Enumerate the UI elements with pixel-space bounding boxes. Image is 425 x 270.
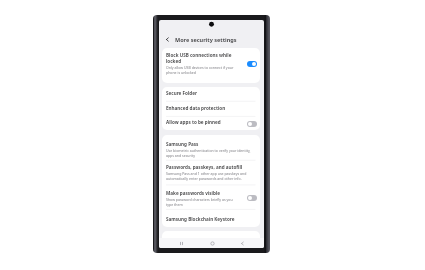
button[interactable]: Toggle off [247,195,257,201]
staticText: Block USB connections while locked [166,52,232,65]
staticText: Show password characters briefly as you … [166,197,233,207]
button[interactable]: Toggle on [247,61,257,67]
button[interactable]: Toggle off [247,121,257,127]
staticText: Enhanced data protection [166,105,226,111]
staticText: Secure Folder [166,90,197,96]
staticText: Passwords, passkeys, and autofill [166,164,243,170]
button[interactable]: Samsung Blockchain Keystore [162,211,260,227]
staticText: Samsung Pass and 1 other app use passkey… [166,171,247,181]
button[interactable]: Back [159,32,175,46]
staticText: Use biometric authentication to verify y… [166,148,251,158]
staticText: Allow apps to be pinned [166,119,221,125]
button[interactable]: Secure Folder [162,87,260,101]
staticText: Make passwords visible [166,190,220,196]
staticText: Only allow USB devices to connect if you… [166,65,234,75]
button[interactable]: Recents [173,238,189,248]
staticText: Samsung Blockchain Keystore [166,216,235,222]
staticText: More security settings [175,36,237,43]
button[interactable]: Back [234,238,250,248]
button[interactable]: Enhanced data protection [162,101,260,115]
button[interactable]: Allow apps to be pinned [162,115,260,129]
button[interactable]: Samsung Pass [162,135,260,161]
staticText: Samsung Pass [166,141,199,147]
button[interactable]: Block USB connections while locked [162,48,260,83]
button[interactable]: Home [204,238,220,248]
button[interactable]: Make passwords visible [162,186,260,211]
button[interactable]: Passwords, passkeys, and autofill [162,161,260,186]
